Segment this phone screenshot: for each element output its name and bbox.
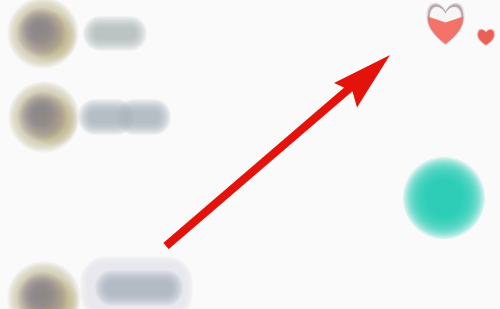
button[interactable]: Conversation — [0, 0, 500, 74]
button[interactable]: Conversation — [0, 84, 500, 158]
button[interactable]: Like — [0, 0, 500, 60]
button[interactable]: Message — [0, 258, 500, 309]
